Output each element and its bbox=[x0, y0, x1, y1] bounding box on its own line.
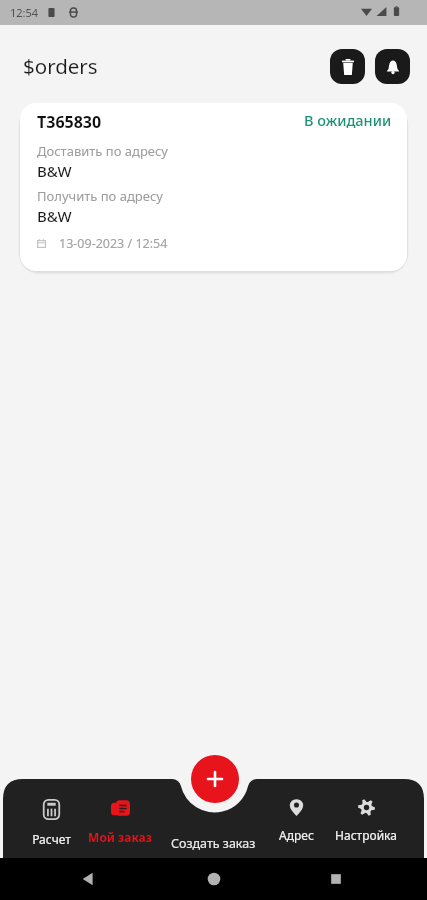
staticText: Мой заказ bbox=[88, 829, 152, 845]
staticText: Расчет bbox=[32, 831, 71, 847]
button[interactable]: Notifications bbox=[375, 49, 410, 84]
staticText: В ожидании bbox=[304, 110, 392, 130]
button[interactable]: T365830 bbox=[20, 103, 407, 271]
button[interactable]: Create order bbox=[191, 755, 239, 803]
button[interactable]: Delete bbox=[330, 49, 365, 84]
staticText: Создать заказ bbox=[171, 835, 256, 852]
staticText: Доставить по адресу bbox=[37, 142, 168, 160]
staticText: B&W bbox=[37, 206, 72, 226]
staticText: 12:54 bbox=[10, 5, 39, 20]
button[interactable]: Создать заказ bbox=[171, 835, 256, 852]
button[interactable]: Адрес bbox=[252, 779, 340, 843]
staticText: Адрес bbox=[279, 827, 314, 843]
staticText: B&W bbox=[37, 161, 72, 181]
button[interactable]: Мой заказ bbox=[76, 779, 164, 845]
button[interactable]: Расчет bbox=[7, 779, 95, 847]
staticText: Получить по адресу bbox=[37, 187, 163, 205]
button[interactable]: Настройка bbox=[322, 779, 410, 843]
staticText: Настройка bbox=[335, 827, 397, 843]
staticText: $orders bbox=[23, 52, 98, 80]
staticText: 13-09-2023 / 12:54 bbox=[59, 235, 168, 252]
staticText: T365830 bbox=[37, 111, 102, 133]
